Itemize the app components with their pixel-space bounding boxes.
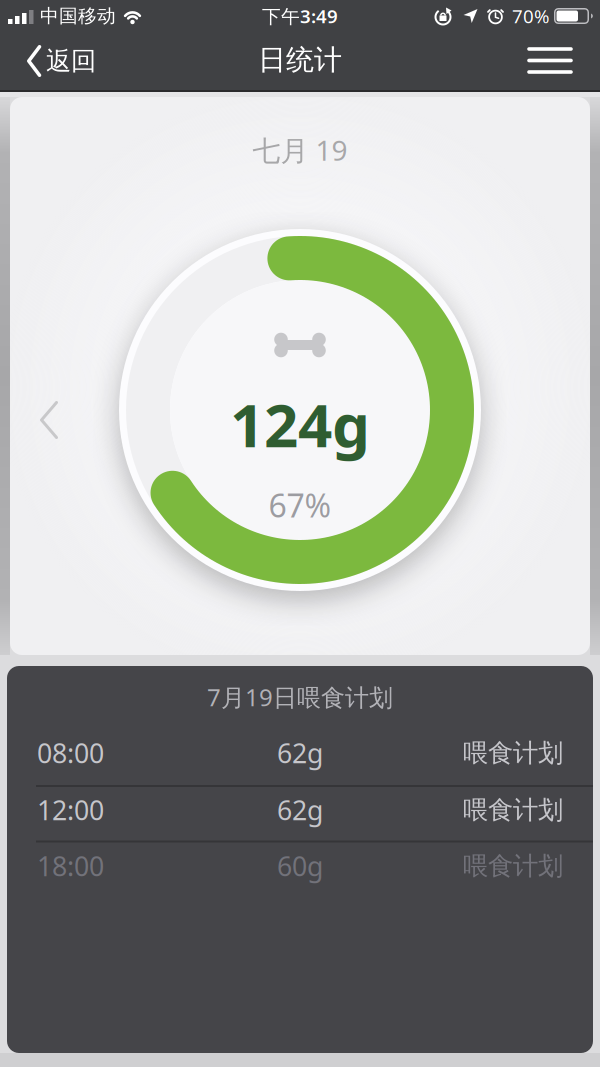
staticText: 62g	[277, 735, 323, 771]
button[interactable]	[29, 390, 68, 449]
staticText: 日统计	[258, 43, 342, 77]
staticText: 喂食计划	[463, 737, 563, 768]
staticText: 60g	[277, 848, 323, 884]
staticText: 喂食计划	[463, 850, 563, 881]
staticText: 62g	[277, 792, 323, 828]
button[interactable]: 08:00	[37, 731, 563, 775]
button[interactable]: 返回	[27, 45, 96, 77]
staticText: 12:00	[37, 792, 104, 828]
staticText: 七月 19	[252, 131, 347, 169]
staticText: 67%	[268, 484, 331, 526]
staticText: 08:00	[37, 735, 104, 771]
staticText: 下午3:49	[262, 4, 338, 28]
staticText: 喂食计划	[463, 794, 563, 825]
button[interactable]: 18:00	[37, 844, 563, 888]
staticText: 18:00	[37, 848, 104, 884]
staticText: 中国移动	[40, 4, 116, 27]
staticText: 124g	[230, 384, 370, 464]
staticText: 返回	[46, 45, 96, 76]
staticText: 7月19日喂食计划	[207, 681, 393, 713]
button[interactable]	[529, 47, 571, 75]
staticText: 70%	[512, 4, 550, 28]
button[interactable]: 12:00	[37, 788, 563, 832]
